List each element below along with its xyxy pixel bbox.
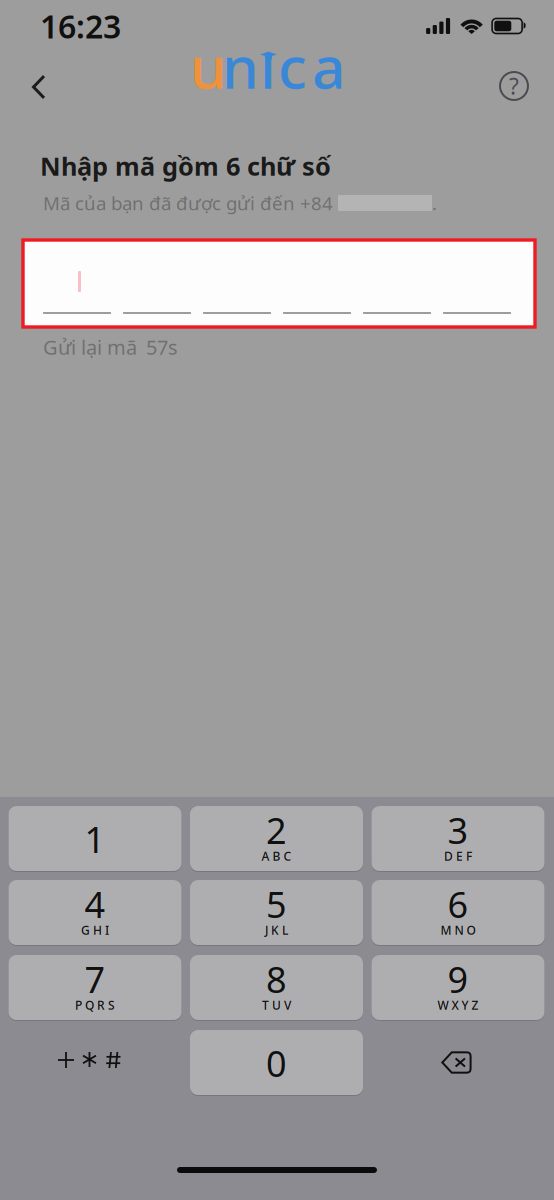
staticText: M N O xyxy=(440,922,475,938)
button[interactable]: 4 xyxy=(8,880,181,946)
staticText: 57s xyxy=(146,334,178,360)
staticText: n xyxy=(222,27,270,105)
staticText: D E F xyxy=(444,848,472,864)
staticText: a xyxy=(312,27,346,105)
staticText: Gửi lại mã xyxy=(43,334,137,360)
staticText: W X Y Z xyxy=(437,997,478,1013)
staticText: G H I xyxy=(81,922,109,938)
button[interactable]: Help xyxy=(492,64,536,108)
staticText: 9 xyxy=(447,955,468,1003)
staticText: 5 xyxy=(266,880,287,928)
staticText: A B C xyxy=(261,848,291,864)
staticText: J K L xyxy=(265,922,288,938)
button[interactable] xyxy=(23,240,535,327)
staticText: T U V xyxy=(262,997,291,1013)
button[interactable]: 2 xyxy=(190,806,363,872)
staticText: Mã của bạn đã được gửi đến +84 xyxy=(43,191,333,215)
button[interactable]: 5 xyxy=(190,880,363,946)
staticText: 0 xyxy=(266,1039,287,1087)
button[interactable]: Plus, asterisk and hash xyxy=(8,1030,181,1096)
staticText: 7 xyxy=(84,955,105,1003)
button[interactable]: 0 xyxy=(190,1030,363,1096)
button[interactable]: 9 xyxy=(371,955,544,1021)
staticText: 4 xyxy=(84,880,105,928)
button[interactable]: 7 xyxy=(8,955,181,1021)
staticText: ? xyxy=(509,71,519,101)
button[interactable]: 3 xyxy=(371,806,544,872)
staticText: . xyxy=(432,191,437,215)
button[interactable]: 1 xyxy=(8,806,181,872)
staticText: u xyxy=(190,27,238,105)
button[interactable]: 6 xyxy=(371,880,544,946)
staticText: 6 xyxy=(447,880,468,928)
staticText: 3 xyxy=(447,806,468,854)
staticText: Nhập mã gồm 6 chữ số xyxy=(40,149,331,183)
staticText: 1 xyxy=(84,815,105,863)
button[interactable]: Delete xyxy=(371,1030,544,1096)
staticText: ı xyxy=(260,27,276,105)
staticText: 2 xyxy=(266,806,287,854)
button[interactable]: 8 xyxy=(190,955,363,1021)
staticText: 8 xyxy=(266,955,287,1003)
button[interactable]: Back xyxy=(16,64,62,110)
staticText: P Q R S xyxy=(75,997,115,1013)
button[interactable]: Gửi lại mã xyxy=(43,333,343,361)
staticText: 16:23 xyxy=(40,5,121,47)
staticText: c xyxy=(278,27,307,105)
